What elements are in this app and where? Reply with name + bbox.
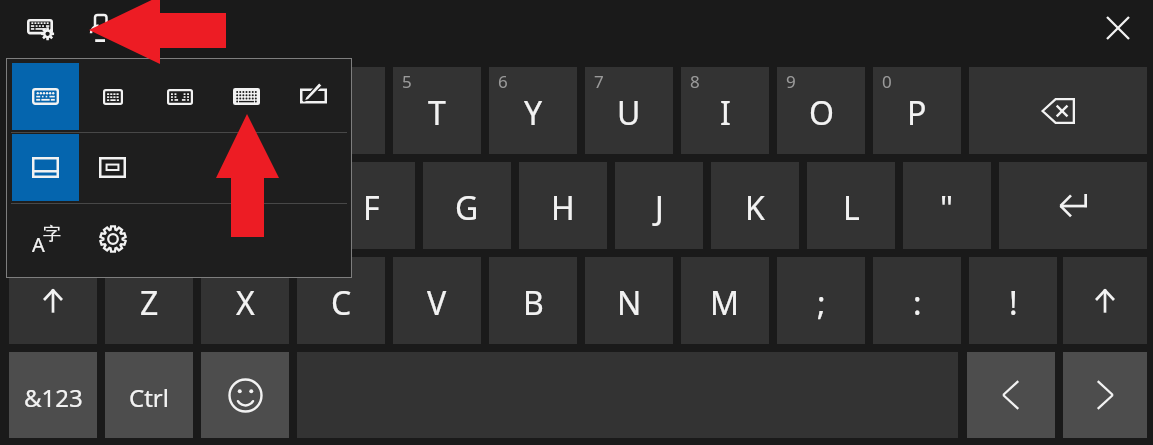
staticText: F xyxy=(363,186,380,230)
staticText: M xyxy=(710,281,740,325)
button[interactable]: 8 xyxy=(681,67,769,154)
button[interactable]: Split keyboard layout xyxy=(146,63,213,130)
button[interactable]: Ctrl xyxy=(105,352,193,438)
button[interactable]: B xyxy=(489,257,577,344)
button[interactable]: 2 xyxy=(105,67,193,154)
button[interactable]: Handwriting panel xyxy=(280,63,347,130)
button[interactable]: K xyxy=(711,162,799,249)
button[interactable]: Z xyxy=(105,257,193,344)
staticText: V xyxy=(427,281,447,325)
button[interactable]: Keyboard settings xyxy=(14,6,64,52)
staticText: L xyxy=(843,186,860,230)
button[interactable]: 1 xyxy=(9,67,97,154)
button[interactable]: D xyxy=(231,162,319,249)
button[interactable]: Emoji xyxy=(201,352,289,438)
button[interactable]: 7 xyxy=(585,67,673,154)
staticText: 字 xyxy=(43,223,61,246)
button[interactable]: 4 xyxy=(297,67,385,154)
button[interactable]: Backspace xyxy=(969,67,1147,154)
staticText: O xyxy=(809,91,834,135)
button[interactable]: 9 xyxy=(777,67,865,154)
staticText: E xyxy=(236,91,254,135)
button[interactable]: N xyxy=(585,257,673,344)
staticText: J xyxy=(655,186,664,230)
button[interactable]: Docked keyboard xyxy=(12,134,79,201)
button[interactable]: ! xyxy=(969,257,1057,344)
button[interactable]: Language xyxy=(12,205,79,272)
button[interactable]: 0 xyxy=(873,67,961,154)
staticText: D xyxy=(263,186,287,230)
button[interactable]: Shift xyxy=(9,257,97,344)
staticText: 2 xyxy=(114,70,124,93)
staticText: Q xyxy=(41,91,66,135)
button[interactable]: Shift xyxy=(1063,257,1147,344)
staticText: 7 xyxy=(594,70,604,93)
staticText: 8 xyxy=(690,70,700,93)
staticText: Y xyxy=(524,91,543,135)
button[interactable]: C xyxy=(297,257,385,344)
button[interactable]: V xyxy=(393,257,481,344)
staticText: : xyxy=(913,281,922,325)
button[interactable]: Small keyboard layout xyxy=(79,63,146,130)
button[interactable]: Standard keyboard layout xyxy=(213,63,280,130)
button[interactable]: M xyxy=(681,257,769,344)
staticText: I xyxy=(720,91,731,135)
staticText: Ctrl xyxy=(129,381,169,414)
button[interactable]: 5 xyxy=(393,67,481,154)
button[interactable]: Close xyxy=(1094,4,1142,52)
button[interactable]: &123 xyxy=(9,352,97,438)
button[interactable]: Default keyboard layout xyxy=(12,63,79,130)
staticText: ; xyxy=(817,281,826,325)
staticText: C xyxy=(331,281,352,325)
staticText: X xyxy=(236,281,255,325)
staticText: " xyxy=(940,186,954,230)
staticText: W xyxy=(134,91,164,135)
button[interactable]: 3 xyxy=(201,67,289,154)
staticText: T xyxy=(428,91,446,135)
button[interactable]: J xyxy=(615,162,703,249)
staticText: R xyxy=(331,91,351,135)
button[interactable]: " xyxy=(903,162,991,249)
staticText: Z xyxy=(140,281,159,325)
staticText: S xyxy=(170,186,188,230)
button[interactable]: ; xyxy=(777,257,865,344)
staticText: 9 xyxy=(786,70,796,93)
staticText: P xyxy=(907,91,927,135)
staticText: U xyxy=(617,91,641,135)
staticText: 4 xyxy=(306,70,316,93)
staticText: 0 xyxy=(882,70,892,93)
staticText: B xyxy=(523,281,544,325)
staticText: 6 xyxy=(498,70,508,93)
button[interactable]: Enter xyxy=(999,162,1147,249)
staticText: N xyxy=(617,281,642,325)
button[interactable]: Floating keyboard xyxy=(79,134,146,201)
button[interactable]: G xyxy=(423,162,511,249)
button[interactable]: Cursor left xyxy=(967,352,1055,438)
button[interactable]: 6 xyxy=(489,67,577,154)
staticText: K xyxy=(745,186,765,230)
staticText: 5 xyxy=(402,70,412,93)
button[interactable]: L xyxy=(807,162,895,249)
staticText: A xyxy=(73,186,94,230)
button[interactable]: Settings xyxy=(79,205,146,272)
button[interactable]: H xyxy=(519,162,607,249)
button[interactable]: S xyxy=(135,162,223,249)
button[interactable]: : xyxy=(873,257,961,344)
button[interactable]: F xyxy=(327,162,415,249)
staticText: G xyxy=(455,186,479,230)
staticText: A xyxy=(32,231,45,258)
staticText: ! xyxy=(1009,281,1018,325)
button[interactable]: Cursor right xyxy=(1063,352,1147,438)
button[interactable]: X xyxy=(201,257,289,344)
staticText: &123 xyxy=(24,381,83,414)
button[interactable]: Keyboard layout options xyxy=(74,6,124,52)
staticText: H xyxy=(551,186,575,230)
button[interactable]: A xyxy=(39,162,127,249)
